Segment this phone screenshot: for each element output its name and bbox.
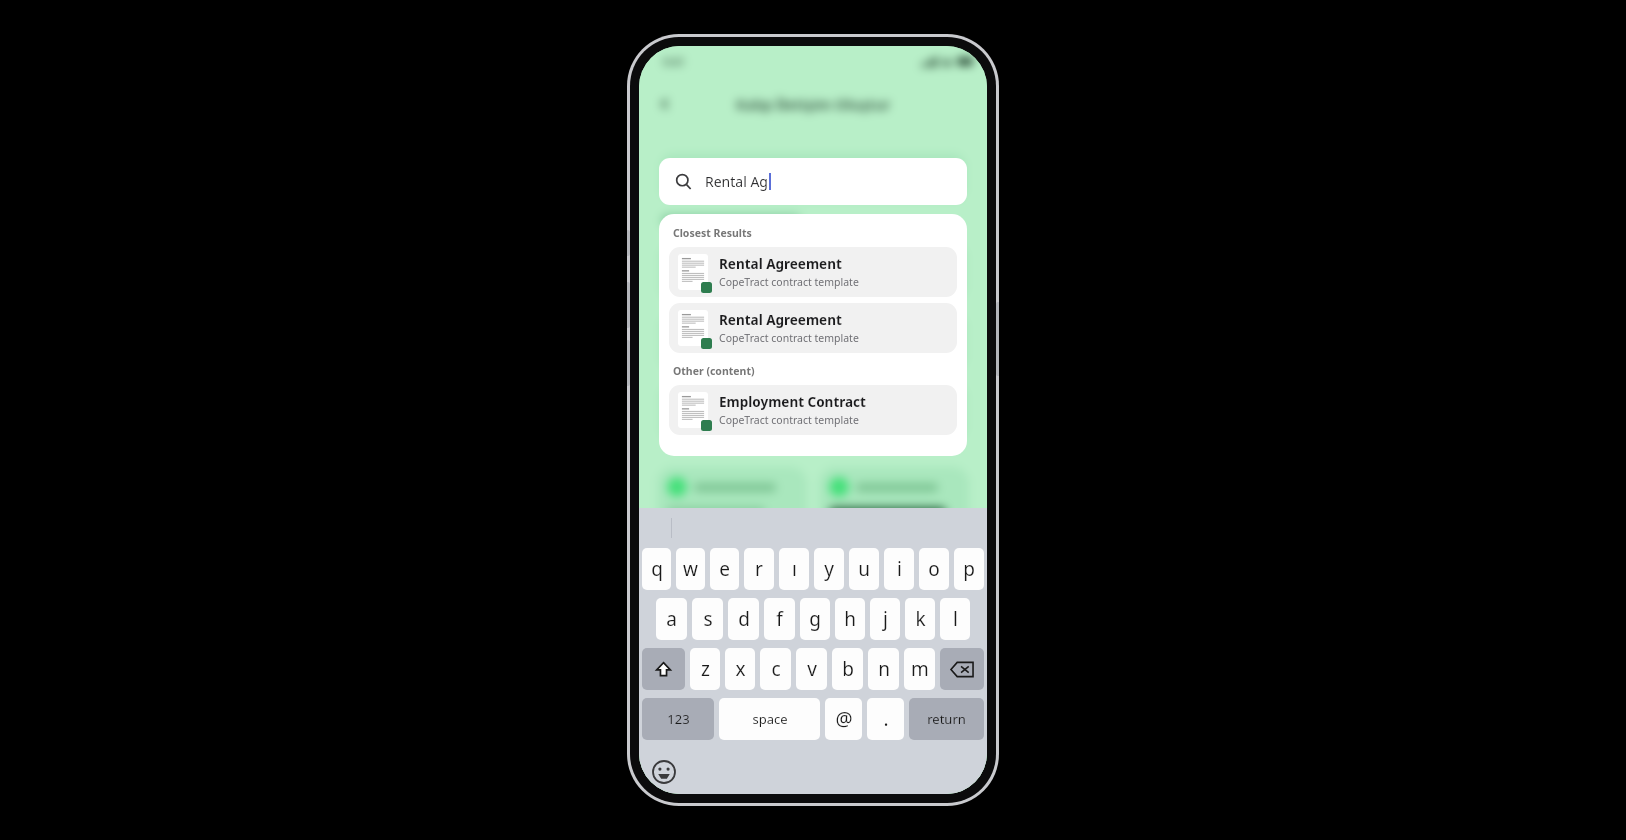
staticText: n [878, 656, 890, 682]
staticText: l [953, 606, 958, 632]
staticText: e [719, 556, 730, 582]
staticText: CopeTract contract template [719, 413, 859, 427]
staticText: u [858, 556, 870, 582]
staticText: y [824, 556, 834, 582]
staticText: c [771, 656, 781, 682]
staticText: Employment Contract [719, 393, 866, 411]
staticText: v [807, 656, 817, 682]
button[interactable]: y [814, 548, 844, 590]
button[interactable]: w [676, 548, 705, 590]
button[interactable]: Backspace [940, 648, 984, 690]
staticText: s [703, 606, 713, 632]
staticText: o [928, 556, 940, 582]
button[interactable]: @ [825, 698, 862, 740]
button[interactable]: Employment Contract [669, 385, 957, 435]
staticText: Other (content) [673, 364, 755, 378]
button[interactable]: Emoji [652, 760, 676, 784]
button[interactable]: ı [779, 548, 809, 590]
staticText: d [738, 606, 750, 632]
button[interactable]: o [919, 548, 949, 590]
staticText: Closest Results [673, 226, 752, 240]
button[interactable]: c [760, 648, 791, 690]
button[interactable]: Rental Agreement [669, 303, 957, 353]
staticText: w [683, 556, 698, 582]
staticText: b [842, 656, 854, 682]
button[interactable]: Rental Ag [659, 158, 967, 205]
button[interactable]: d [728, 598, 759, 640]
button[interactable]: p [954, 548, 984, 590]
button[interactable]: q [642, 548, 671, 590]
staticText: i [897, 556, 902, 582]
button[interactable]: f [764, 598, 795, 640]
staticText: space [752, 710, 788, 728]
button[interactable]: n [868, 648, 899, 690]
button[interactable]: b [832, 648, 863, 690]
button[interactable]: k [905, 598, 935, 640]
button[interactable]: 123 [642, 698, 714, 740]
button[interactable]: h [835, 598, 865, 640]
staticText: return [927, 710, 966, 728]
staticText: CopeTract contract template [719, 331, 859, 345]
staticText: h [844, 606, 856, 632]
staticText: Rental Agreement [719, 311, 842, 329]
staticText: x [735, 656, 746, 682]
button[interactable]: a [656, 598, 687, 640]
staticText: k [915, 606, 926, 632]
button[interactable]: j [870, 598, 900, 640]
button[interactable]: s [692, 598, 723, 640]
button[interactable]: z [690, 648, 720, 690]
button[interactable]: g [800, 598, 830, 640]
staticText: f [776, 606, 783, 632]
button[interactable]: m [904, 648, 935, 690]
staticText: p [963, 556, 975, 582]
staticText: ı [792, 556, 797, 582]
staticText: m [911, 656, 929, 682]
staticText: @ [835, 706, 853, 732]
button[interactable]: return [909, 698, 984, 740]
staticText: CopeTract contract template [719, 275, 859, 289]
button[interactable]: space [719, 698, 820, 740]
button[interactable]: . [867, 698, 904, 740]
staticText: 123 [667, 710, 690, 728]
button[interactable]: l [940, 598, 970, 640]
staticText: a [666, 606, 677, 632]
button[interactable]: Shift [642, 648, 685, 690]
staticText: . [883, 706, 889, 732]
staticText: Rental Ag [705, 172, 768, 191]
button[interactable]: x [725, 648, 755, 690]
button[interactable]: e [710, 548, 739, 590]
staticText: z [701, 656, 710, 682]
button[interactable]: Rental Agreement [669, 247, 957, 297]
staticText: g [809, 606, 821, 632]
button[interactable]: r [744, 548, 774, 590]
staticText: j [883, 606, 888, 632]
button[interactable]: i [884, 548, 914, 590]
staticText: Rental Agreement [719, 255, 842, 273]
staticText: r [755, 556, 763, 582]
button[interactable]: u [849, 548, 879, 590]
staticText: q [651, 556, 663, 582]
staticText: 9:41 [663, 54, 685, 69]
staticText: Kalıp İletişim Oluştur [736, 94, 891, 114]
button[interactable]: v [796, 648, 827, 690]
